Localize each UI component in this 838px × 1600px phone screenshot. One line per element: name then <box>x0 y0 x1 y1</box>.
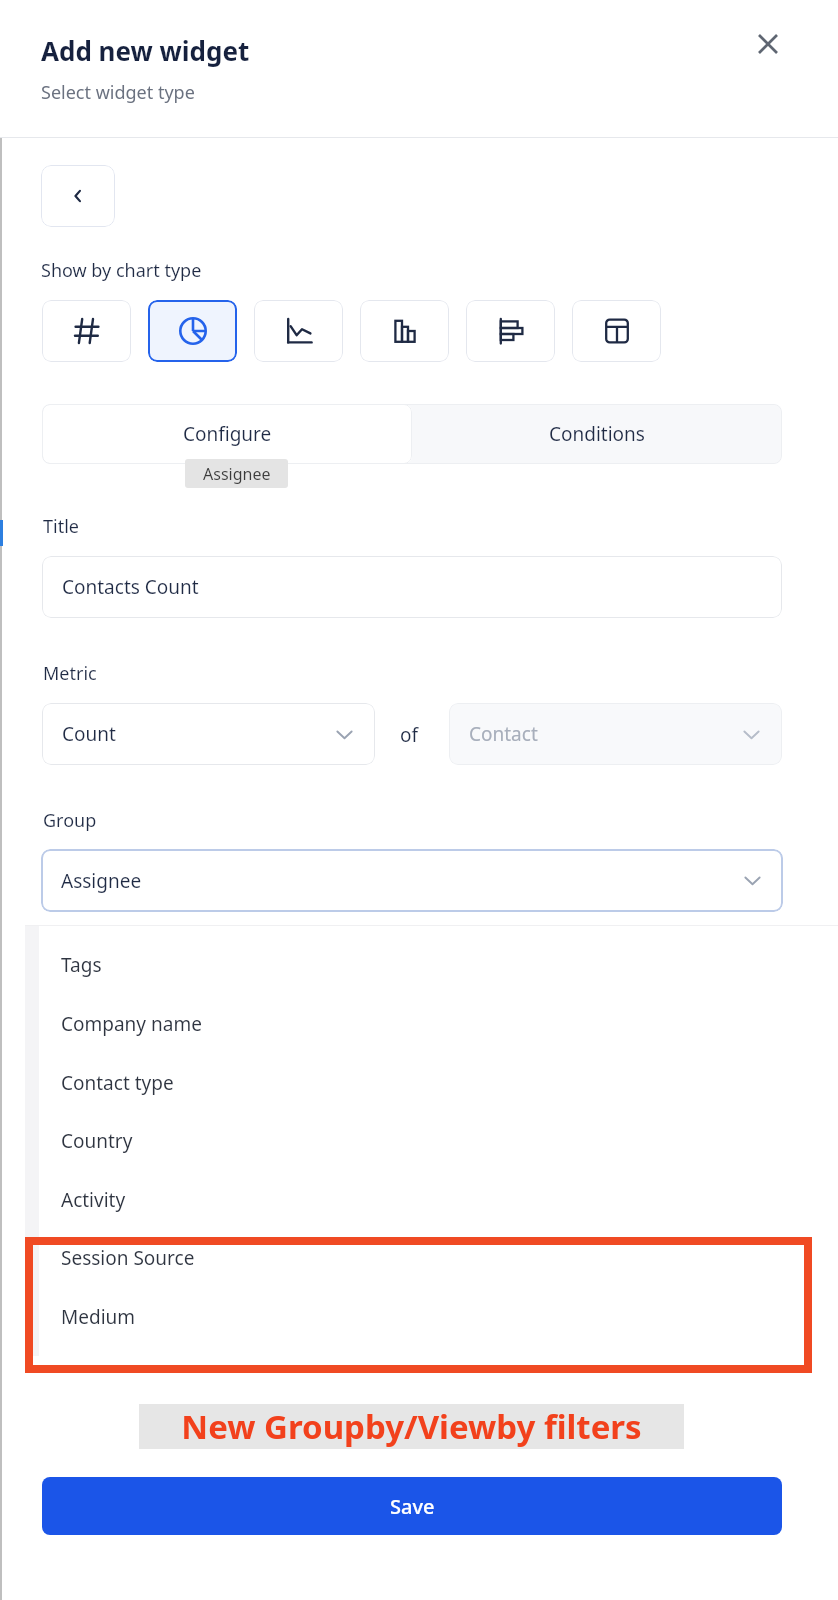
button[interactable]: Country <box>39 1112 782 1170</box>
staticText: Session Source <box>61 1245 195 1271</box>
button[interactable]: Contact type <box>39 1054 782 1112</box>
staticText: Activity <box>61 1187 126 1213</box>
staticText: Metric <box>43 661 97 686</box>
button[interactable]: Company name <box>39 995 782 1053</box>
staticText: Title <box>43 514 79 539</box>
staticText: Select widget type <box>41 80 195 105</box>
button[interactable]: Close <box>742 18 794 70</box>
button[interactable]: Number chart <box>42 300 131 362</box>
staticText: Save <box>390 1493 435 1520</box>
button[interactable]: Tags <box>39 936 782 994</box>
button[interactable]: Column chart <box>360 300 449 362</box>
staticText: Contacts Count <box>62 574 199 600</box>
staticText: Tags <box>61 952 102 978</box>
button[interactable]: Activity <box>39 1171 782 1229</box>
staticText: Company name <box>61 1011 202 1037</box>
button[interactable]: Assignee <box>41 849 783 912</box>
staticText: Conditions <box>549 421 645 447</box>
staticText: Contact <box>469 721 538 747</box>
staticText: Show by chart type <box>41 258 202 283</box>
staticText: Assignee <box>203 463 271 485</box>
staticText: Assignee <box>61 868 142 894</box>
button[interactable]: Line chart <box>254 300 343 362</box>
staticText: Add new widget <box>41 33 250 68</box>
button[interactable]: Pie chart <box>148 300 237 362</box>
button[interactable]: Session Source <box>39 1229 782 1287</box>
button[interactable]: Conditions <box>412 404 782 464</box>
staticText: Contact type <box>61 1070 174 1096</box>
button[interactable]: Configure <box>42 404 412 464</box>
staticText: Count <box>62 721 116 747</box>
staticText: Group <box>43 808 97 833</box>
button[interactable]: Back <box>41 165 115 227</box>
button[interactable]: Save <box>42 1477 782 1535</box>
button[interactable]: Contacts Count <box>42 556 782 618</box>
staticText: Configure <box>183 421 272 447</box>
button[interactable]: Count <box>42 703 375 765</box>
button[interactable]: Medium <box>39 1288 782 1346</box>
staticText: Country <box>61 1128 133 1154</box>
button[interactable]: Table <box>572 300 661 362</box>
staticText: Medium <box>61 1304 136 1330</box>
staticText: New Groupby/Viewby filters <box>139 1404 684 1449</box>
button[interactable]: Bar chart <box>466 300 555 362</box>
staticText: of <box>400 722 419 748</box>
button[interactable]: Contact <box>449 703 782 765</box>
